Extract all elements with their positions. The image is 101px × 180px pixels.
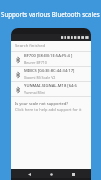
staticText: Is your scale not supported?	[15, 101, 68, 106]
button[interactable]: Home	[47, 170, 55, 178]
button[interactable]: Back	[25, 170, 33, 178]
button[interactable]: Is your scale not supported?	[11, 100, 91, 113]
button[interactable]: Recents	[69, 170, 77, 178]
staticText: Search finished	[15, 43, 46, 49]
button[interactable]: YUNMAI-SIGNAL-M18 [64:6 05:AA	[11, 82, 91, 96]
staticText: MIBCS [04:3E:8C:44:34:17]	[24, 68, 75, 74]
staticText: BF700 [E8:EB:1E:5A:F5:4 ]	[24, 53, 73, 59]
staticText: Xiaomi Mi Scale V2	[24, 75, 56, 80]
staticText: YUNMAI-SIGNAL-M18 [64:6 05:AA	[24, 83, 89, 89]
staticText: Beurer BF710	[24, 60, 47, 65]
staticText: Click here to help add support for it	[15, 107, 82, 112]
button[interactable]: MIBCS [04:3E:8C:44:34:17]	[11, 67, 91, 81]
staticText: Supports various Bluetooth scales	[1, 10, 100, 18]
button[interactable]: BF700 [E8:EB:1E:5A:F5:4 ]	[11, 52, 91, 66]
staticText: Yunmai Mini	[24, 90, 45, 95]
